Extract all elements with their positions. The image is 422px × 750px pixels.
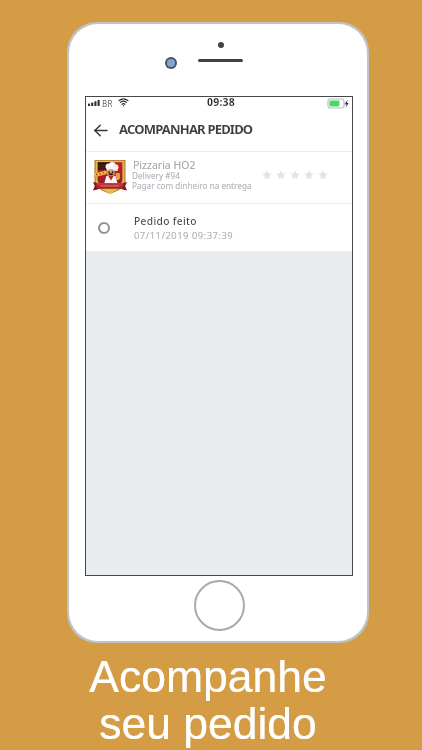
button[interactable]: Pedido feito	[86, 204, 352, 251]
staticText: Pizzaria HO2	[133, 158, 196, 172]
button[interactable]: Pizzaria HO2	[86, 152, 352, 203]
staticText: Pagar com dinheiro na entrega	[132, 180, 252, 191]
staticText: 07/11/2019 09:37:39	[134, 229, 234, 242]
staticText: seu pedido	[0, 699, 419, 749]
staticText: BR	[102, 98, 113, 109]
staticText: Delivery #94	[132, 170, 180, 181]
staticText: Pedido feito	[134, 214, 197, 228]
staticText: Acompanhe	[0, 652, 419, 702]
button[interactable]: Voltar	[87, 117, 113, 143]
staticText: 09:38	[207, 95, 235, 109]
staticText: ACOMPANHAR PEDIDO	[119, 120, 253, 138]
